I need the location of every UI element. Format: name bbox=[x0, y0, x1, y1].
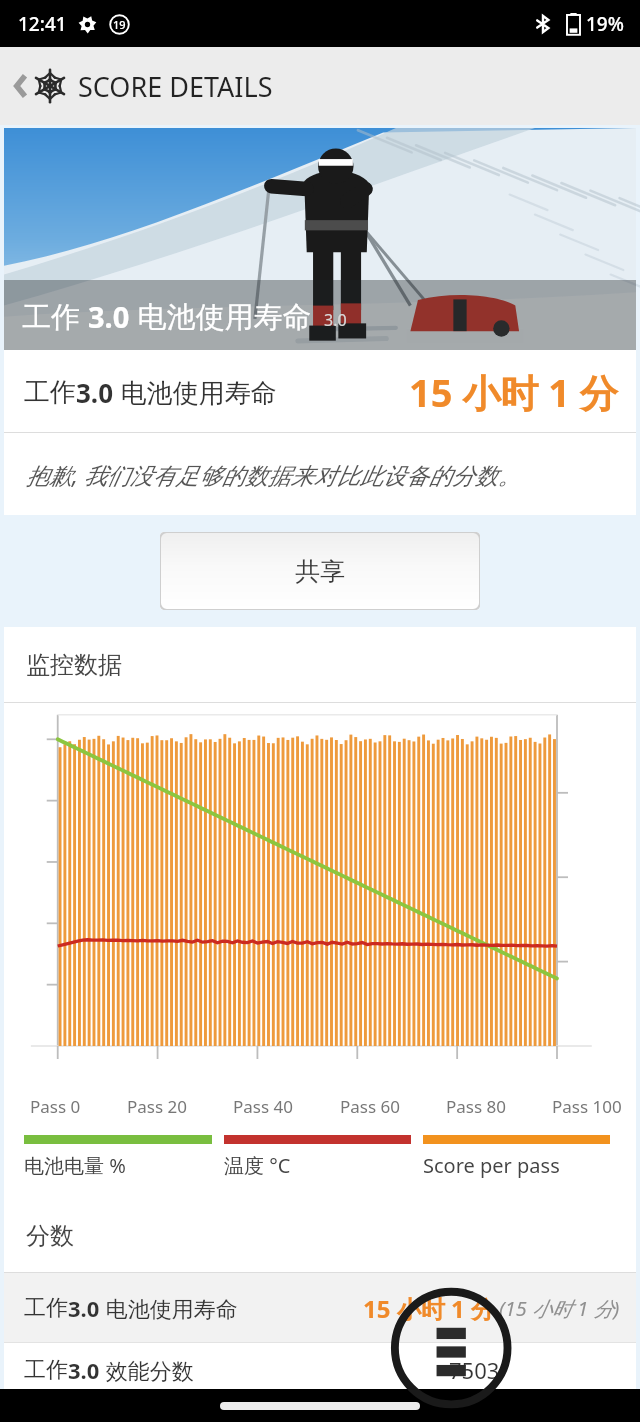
staticText: 15 小时 1 分 bbox=[409, 366, 618, 418]
button[interactable]: 工作 bbox=[4, 1343, 636, 1389]
button[interactable]: Back bbox=[0, 47, 640, 125]
staticText: 分数 bbox=[26, 1221, 74, 1251]
button[interactable]: 工作 bbox=[4, 1273, 636, 1343]
staticText: 抱歉, 我们没有足够的数据来对比此设备的分数。 bbox=[26, 459, 521, 490]
staticText: 电池使用寿命 bbox=[130, 296, 312, 336]
staticText: 12:41 bbox=[18, 11, 67, 37]
staticText: Pass 20 bbox=[127, 1095, 187, 1118]
staticText: 电池使用寿命 bbox=[100, 1293, 238, 1323]
other: Back bbox=[12, 70, 30, 102]
staticText: 效能分数 bbox=[100, 1355, 194, 1385]
button[interactable]: 共享 bbox=[160, 532, 480, 610]
staticText: 电池使用寿命 bbox=[114, 374, 277, 410]
staticText: Pass 40 bbox=[233, 1095, 293, 1118]
staticText: 3.0 bbox=[324, 309, 347, 331]
staticText: 19 bbox=[113, 17, 126, 32]
staticText: 3.0 bbox=[68, 1293, 100, 1323]
staticText: (15 小时 1 分) bbox=[499, 1295, 620, 1322]
staticText: 3.0 bbox=[88, 297, 130, 336]
staticText: 共享 bbox=[295, 556, 345, 587]
staticText: 工作 bbox=[24, 376, 76, 409]
staticText: Pass 100 bbox=[552, 1095, 622, 1118]
button[interactable]: Home bbox=[220, 1402, 420, 1410]
staticText: 工作 bbox=[22, 296, 88, 336]
staticText: 19% bbox=[586, 11, 624, 37]
staticText: Pass 0 bbox=[30, 1095, 81, 1118]
staticText: 工作 bbox=[24, 1294, 68, 1322]
staticText: SCORE DETAILS bbox=[78, 68, 273, 105]
staticText: 3.0 bbox=[76, 375, 114, 410]
staticText: Pass 60 bbox=[340, 1095, 400, 1118]
staticText: 电池电量 % bbox=[24, 1152, 126, 1179]
button[interactable]: 工作 bbox=[4, 128, 636, 350]
staticText: 15 小时 1 分 bbox=[363, 1292, 495, 1325]
staticText: 3.0 bbox=[68, 1355, 100, 1385]
staticText: 监控数据 bbox=[26, 650, 122, 680]
staticText: 工作 bbox=[24, 1356, 68, 1384]
staticText: Score per pass bbox=[423, 1152, 560, 1179]
staticText: Pass 80 bbox=[446, 1095, 506, 1118]
staticText: 温度 °C bbox=[224, 1152, 291, 1179]
staticText: 7503 bbox=[449, 1355, 500, 1385]
